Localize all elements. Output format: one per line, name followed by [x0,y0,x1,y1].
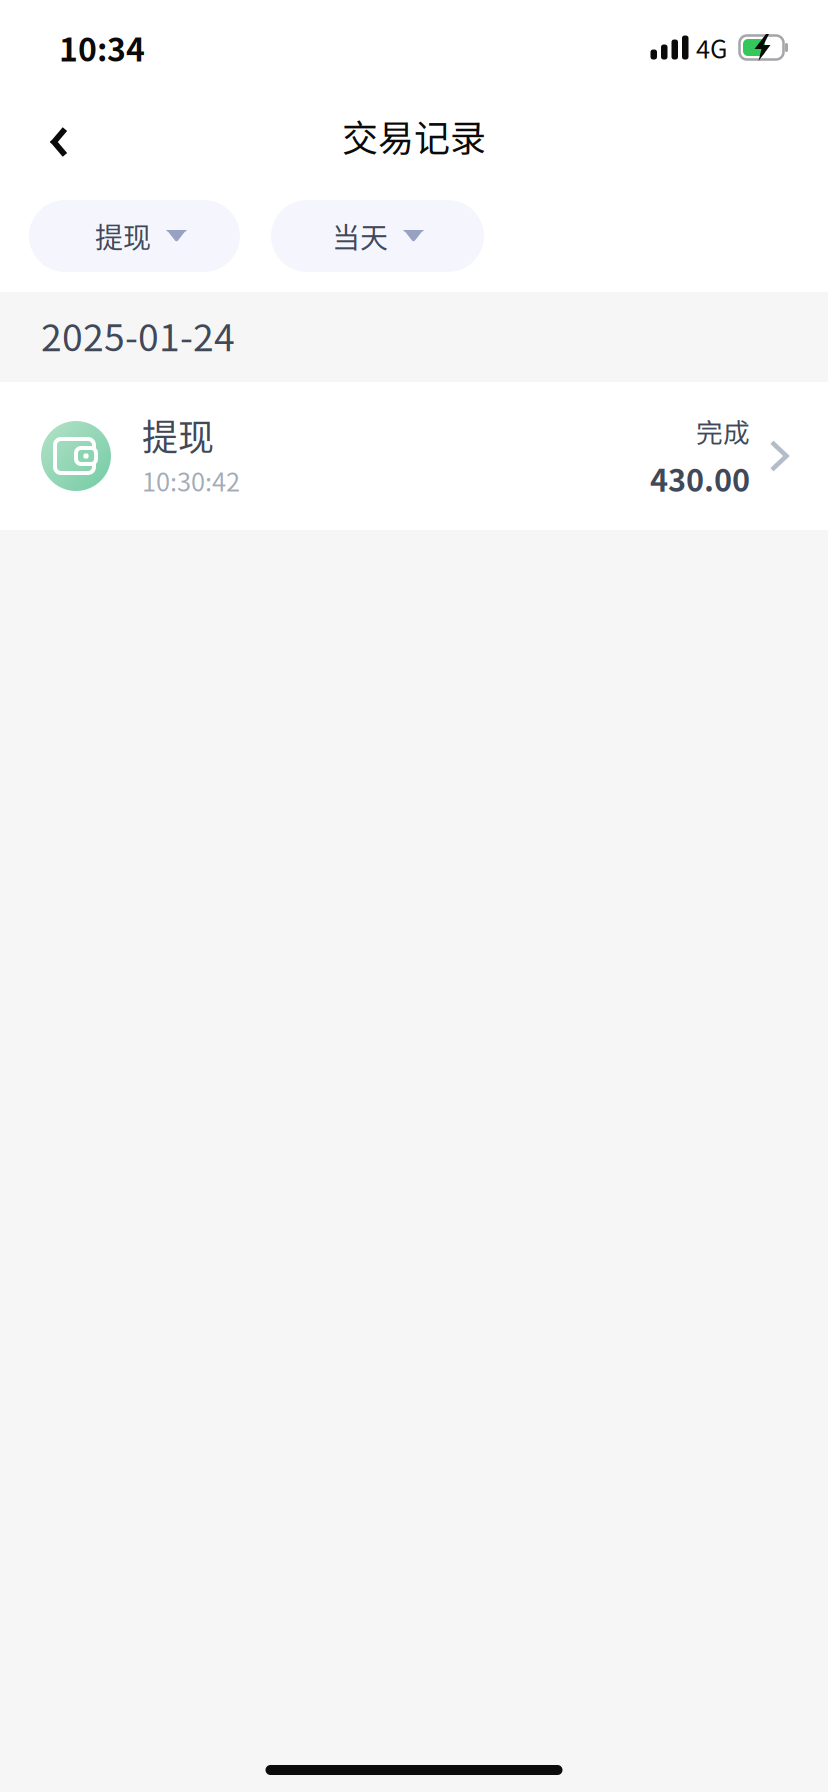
staticText: 提现 [95,216,151,256]
button[interactable]: Back [0,92,99,180]
staticText: 完成 [696,411,750,450]
button[interactable]: 当天 [271,200,484,272]
staticText: 当天 [332,216,388,256]
staticText: 交易记录 [342,110,486,162]
staticText: 2025-01-24 [41,308,235,362]
staticText: 4G [696,29,727,66]
button[interactable]: 提现 [29,200,240,272]
staticText: 10:34 [59,24,145,71]
staticText: 提现 [142,409,214,461]
staticText: 430.00 [650,456,750,500]
staticText: 10:30:42 [142,462,240,499]
button[interactable]: 提现 [0,382,828,530]
